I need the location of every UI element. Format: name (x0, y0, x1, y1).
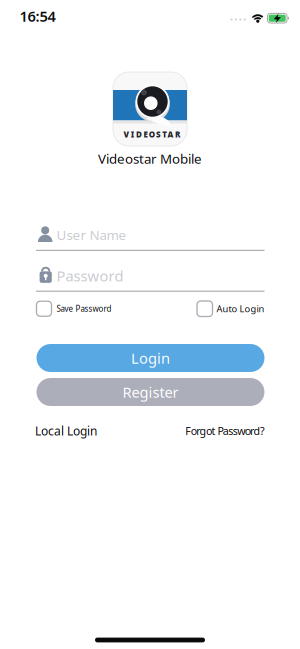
button[interactable]: Auto Login (197, 301, 264, 316)
staticText: Local Login (35, 423, 97, 439)
staticText: VIDEOSTAR (123, 129, 180, 140)
staticText: Save Password (56, 303, 111, 314)
staticText: 16:54 (19, 6, 55, 26)
staticText: Register (122, 382, 178, 402)
button[interactable]: Login (36, 344, 264, 372)
staticText: Password (56, 266, 123, 285)
button[interactable]: Forgot Password? (185, 424, 265, 438)
staticText: User Name (56, 226, 126, 244)
staticText: Auto Login (216, 303, 264, 315)
button[interactable]: Local Login (35, 423, 97, 439)
staticText: Forgot Password? (185, 424, 265, 438)
button[interactable]: Save Password (36, 301, 111, 316)
staticText: Login (131, 348, 170, 368)
staticText: Videostar Mobile (98, 150, 202, 167)
button[interactable]: Register (36, 378, 264, 406)
